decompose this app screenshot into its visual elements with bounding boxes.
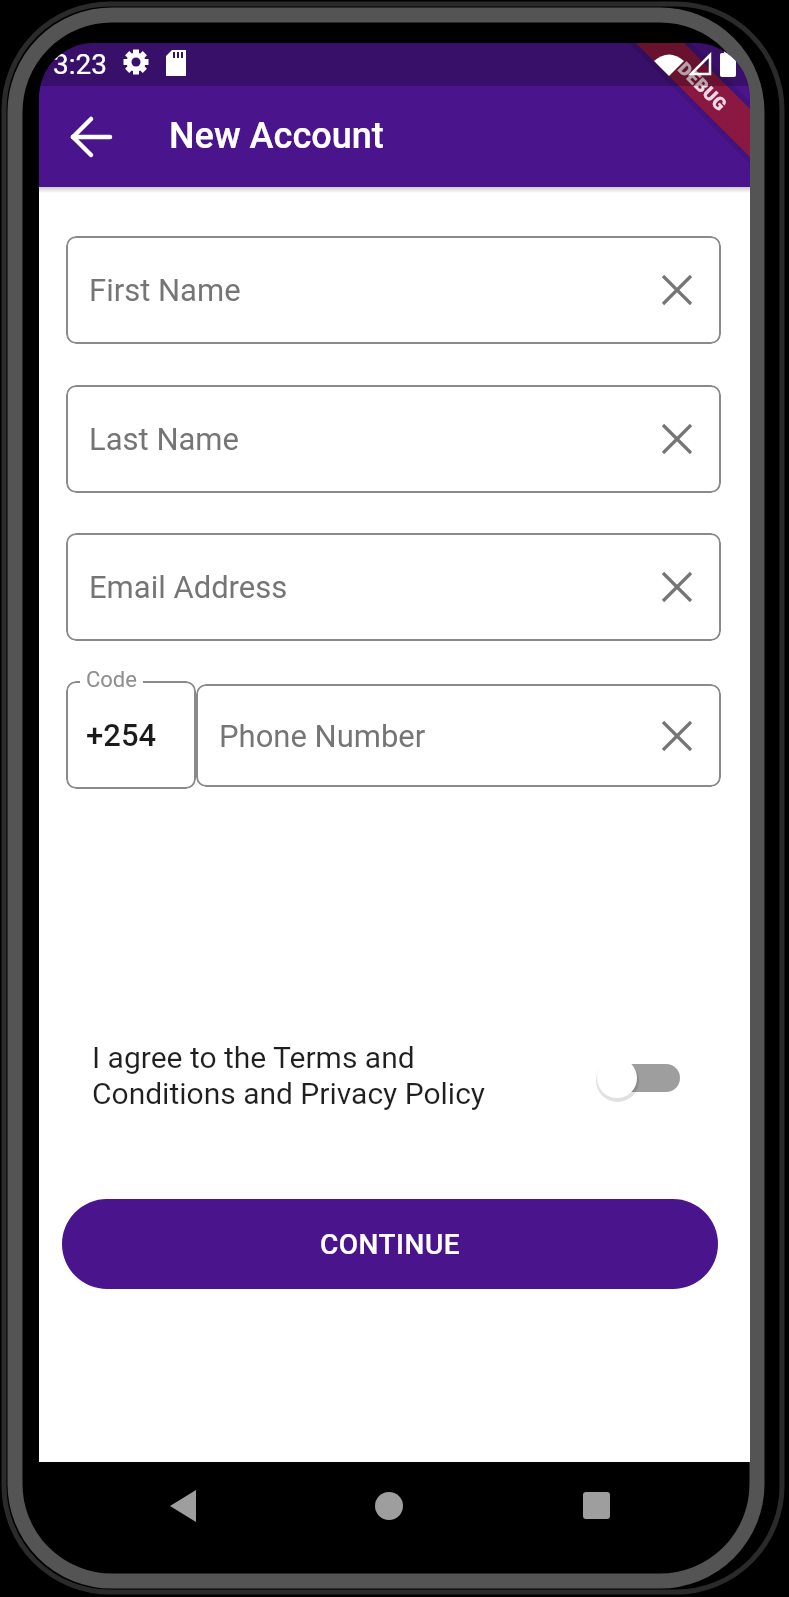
button[interactable] [67,113,115,161]
staticText: I agree to the Terms and Conditions and … [92,1040,486,1111]
button[interactable]: Last Name [66,385,721,493]
button[interactable] [661,720,693,752]
button[interactable] [493,1470,689,1540]
staticText: New Account [169,115,384,157]
button[interactable]: +254 [66,681,196,789]
button[interactable]: First Name [66,236,721,344]
staticText: Last Name [89,421,239,457]
staticText: Code [86,667,137,693]
staticText: 3:23 [53,48,107,81]
staticText: CONTINUE [320,1228,461,1261]
staticText: Phone Number [219,718,426,754]
button[interactable] [100,1470,297,1540]
staticText: First Name [89,272,241,308]
staticText: +254 [86,717,157,753]
button[interactable]: CONTINUE [62,1199,718,1289]
staticText: Email Address [89,569,288,605]
button[interactable] [661,571,693,603]
staticText: DEBUG [674,58,732,116]
button[interactable]: Email Address [66,533,721,641]
button[interactable] [661,274,693,306]
button[interactable] [595,1049,685,1107]
button[interactable] [661,423,693,455]
button[interactable] [297,1470,493,1540]
button[interactable]: Phone Number [196,684,721,787]
